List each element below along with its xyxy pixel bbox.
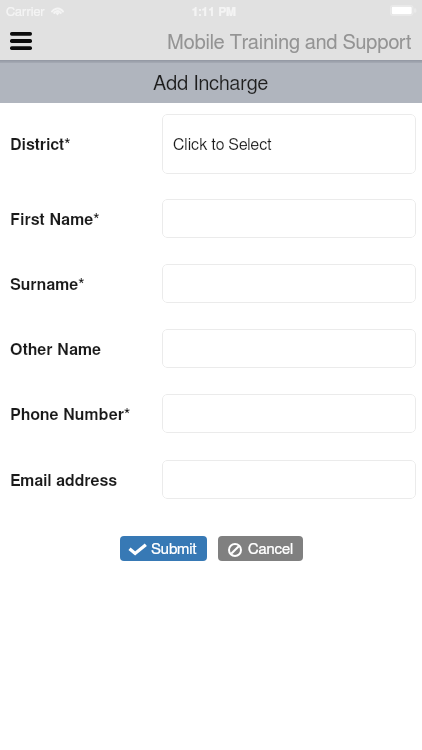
staticText: Click to Select	[173, 137, 272, 153]
staticText: 1:11 PM	[3, 6, 422, 18]
button[interactable]: Phone Number*	[162, 394, 416, 433]
staticText: Submit	[151, 542, 197, 557]
button[interactable]: Other Name	[162, 329, 416, 368]
staticText: Mobile Training and Support	[167, 33, 412, 53]
button[interactable]: Cancel	[218, 536, 303, 561]
staticText: Phone Number*	[10, 407, 131, 423]
button[interactable]: Email address	[162, 460, 416, 499]
staticText: District*	[10, 137, 71, 153]
button[interactable]: Surname*	[162, 264, 416, 303]
staticText: Carrier	[6, 6, 45, 19]
staticText: Email address	[10, 473, 118, 489]
staticText: Add Incharge	[153, 74, 269, 94]
staticText: Surname*	[10, 277, 85, 293]
staticText: Cancel	[248, 542, 294, 557]
button[interactable]: Submit	[120, 536, 207, 561]
staticText: Other Name	[10, 342, 102, 358]
button[interactable]: Open navigation menu	[0, 22, 42, 60]
staticText: First Name*	[10, 212, 100, 228]
button[interactable]: District*	[162, 114, 416, 174]
button[interactable]: First Name*	[162, 199, 416, 238]
